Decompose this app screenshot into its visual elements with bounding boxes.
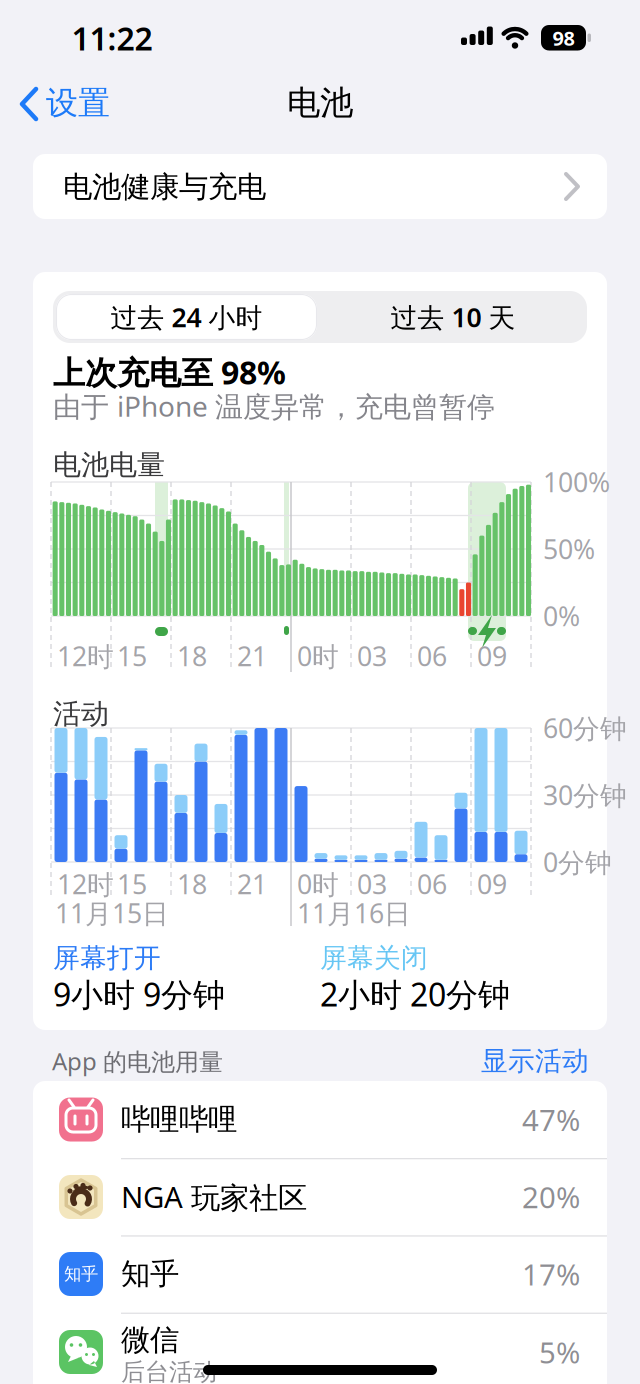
staticText: 06 xyxy=(417,638,447,674)
button[interactable]: 知乎 xyxy=(33,1235,607,1312)
staticText: 0时 xyxy=(297,866,339,902)
staticText: 11月16日 xyxy=(297,895,411,931)
staticText: 60分钟 xyxy=(543,710,627,746)
staticText: 03 xyxy=(357,638,387,674)
staticText: 30分钟 xyxy=(543,777,627,813)
staticText: 47% xyxy=(522,1100,580,1139)
staticText: 15 xyxy=(117,866,147,902)
button[interactable]: 微信 xyxy=(33,1313,607,1384)
staticText: 设置 xyxy=(46,83,110,123)
staticText: 显示活动 xyxy=(481,1045,589,1077)
staticText: 03 xyxy=(357,866,387,902)
staticText: 21 xyxy=(237,638,267,674)
staticText: 过去 24 小时 xyxy=(110,299,262,335)
staticText: 12时 xyxy=(57,638,114,674)
staticText: 0时 xyxy=(297,638,339,674)
staticText: 屏幕打开 xyxy=(53,942,161,974)
staticText: 2小时 20分钟 xyxy=(320,973,510,1015)
staticText: 微信 xyxy=(121,1322,179,1358)
button[interactable]: 显示活动 xyxy=(459,1039,589,1083)
staticText: 5% xyxy=(539,1332,580,1371)
staticText: 11月15日 xyxy=(55,895,169,931)
staticText: 09 xyxy=(477,866,507,902)
staticText: 电池健康与充电 xyxy=(63,169,266,205)
staticText: 活动 xyxy=(53,697,109,731)
staticText: 09 xyxy=(477,638,507,674)
button[interactable]: 电池健康与充电 xyxy=(33,154,607,219)
staticText: 0% xyxy=(543,598,580,634)
staticText: 06 xyxy=(417,866,447,902)
button[interactable]: 过去 10 天 xyxy=(319,292,586,342)
staticText: 21 xyxy=(237,866,267,902)
staticText: 0分钟 xyxy=(543,844,612,880)
staticText: 屏幕关闭 xyxy=(320,942,428,974)
staticText: 20% xyxy=(522,1177,580,1216)
button[interactable]: 哔哩哔哩 xyxy=(33,1081,607,1158)
staticText: 18 xyxy=(177,866,207,902)
staticText: App 的电池用量 xyxy=(52,1045,223,1077)
button[interactable]: NGA 玩家社区 xyxy=(33,1158,607,1235)
staticText: 电池电量 xyxy=(53,448,165,482)
staticText: 9小时 9分钟 xyxy=(53,973,225,1015)
staticText: 98 xyxy=(552,25,574,51)
staticText: 12时 xyxy=(57,866,114,902)
staticText: 18 xyxy=(177,638,207,674)
staticText: 电池 xyxy=(287,82,353,123)
staticText: 100% xyxy=(543,464,610,500)
button[interactable]: 返回设置 xyxy=(16,82,166,126)
staticText: NGA 玩家社区 xyxy=(121,1177,307,1216)
staticText: 知乎 xyxy=(64,1263,98,1285)
staticText: 哔哩哔哩 xyxy=(121,1101,237,1137)
staticText: 后台活动 xyxy=(121,1357,217,1384)
staticText: 上次充电至 98% xyxy=(53,351,286,393)
staticText: 过去 10 天 xyxy=(390,299,515,335)
staticText: 50% xyxy=(543,531,595,567)
staticText: 11:22 xyxy=(71,17,152,59)
staticText: 知乎 xyxy=(121,1256,179,1292)
button[interactable]: 过去 24 小时 xyxy=(56,294,317,340)
staticText: 15 xyxy=(117,638,147,674)
staticText: 由于 iPhone 温度异常，充电曾暂停 xyxy=(53,387,495,425)
staticText: 17% xyxy=(522,1254,580,1293)
